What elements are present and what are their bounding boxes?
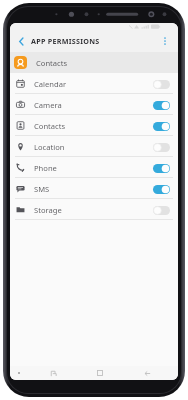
button[interactable]: Recents [46,366,60,380]
button[interactable]: Camera [10,94,178,115]
button[interactable]: Back [140,366,154,380]
staticText: Contacts [34,121,66,131]
button[interactable]: Phone [10,157,178,178]
staticText: Contacts [36,58,68,68]
button[interactable]: Contacts permission toggle [152,119,171,133]
button[interactable]: Phone permission toggle [152,161,171,175]
button[interactable]: Storage permission toggle [152,203,171,217]
staticText: APP PERMISSIONS [31,36,100,46]
button[interactable]: Location [10,136,178,157]
staticText: Location [34,142,65,152]
staticText: SMS [34,184,50,194]
button[interactable]: Contacts [10,115,178,136]
button[interactable]: Home [93,366,107,380]
staticText: Storage [34,205,62,215]
button[interactable]: More options [157,33,173,49]
staticText: Camera [34,100,62,110]
button[interactable]: Camera permission toggle [152,98,171,112]
button[interactable]: Location permission toggle [152,140,171,154]
button[interactable]: Calendar permission toggle [152,77,171,91]
button[interactable]: Storage [10,199,178,220]
button[interactable]: Back [13,33,29,49]
staticText: Phone [34,163,57,173]
staticText: Calendar [34,79,67,89]
button[interactable]: SMS [10,178,178,199]
button[interactable]: SMS permission toggle [152,182,171,196]
button[interactable]: Contacts [10,52,178,73]
button[interactable]: Calendar [10,73,178,94]
